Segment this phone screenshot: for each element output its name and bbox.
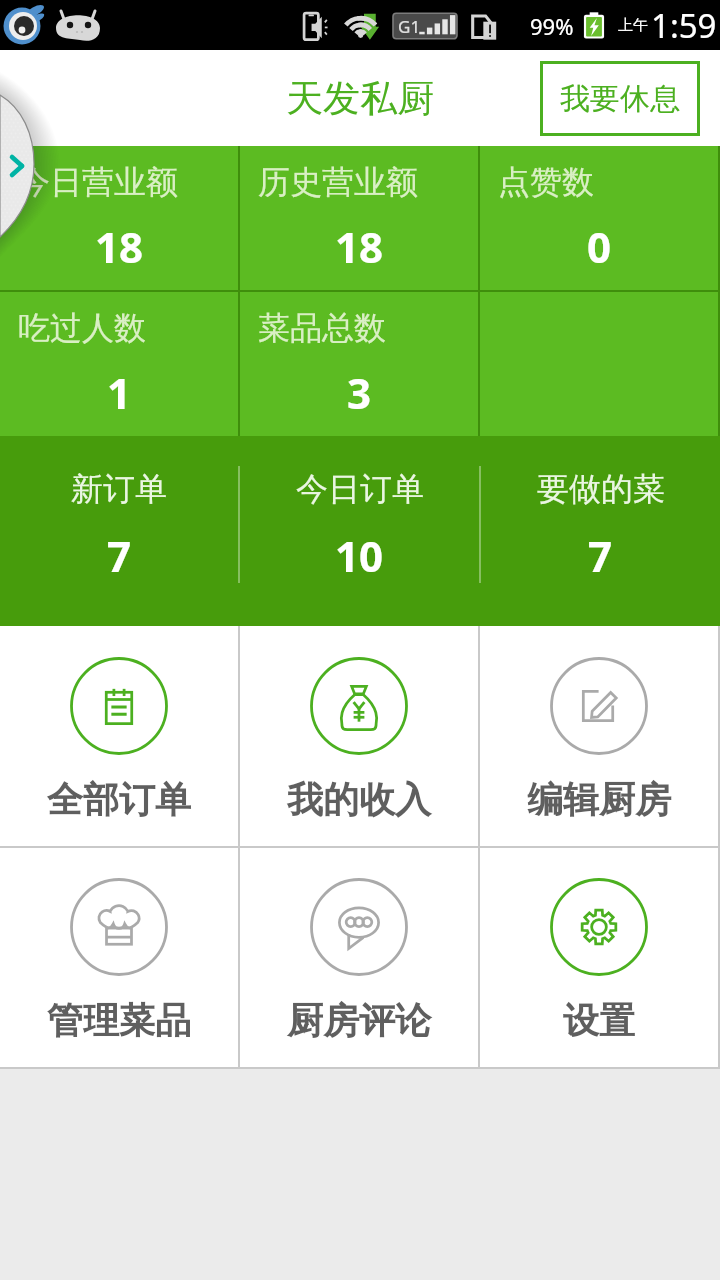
button[interactable]: 吃过人数 (0, 292, 238, 436)
staticText: 我的收入 (287, 777, 431, 822)
staticText: 7 (107, 527, 132, 584)
button[interactable]: 全部订单 (0, 626, 238, 846)
staticText: 上午 (618, 16, 648, 35)
staticText: 1 (0, 364, 238, 421)
staticText: 设置 (563, 998, 635, 1043)
button[interactable]: 厨房评论 (240, 848, 478, 1067)
button[interactable]: 点赞数 (480, 146, 718, 290)
staticText: 全部订单 (47, 777, 191, 822)
button[interactable]: 设置 (480, 848, 718, 1067)
staticText: 今日订单 (296, 469, 424, 509)
button[interactable]: 今日营业额 (0, 146, 238, 290)
staticText: 0 (480, 218, 718, 275)
button[interactable]: 历史营业额 (240, 146, 478, 290)
staticText: 3 (240, 364, 478, 421)
staticText: 编辑厨房 (527, 777, 671, 822)
staticText: 天发私厨 (286, 75, 434, 122)
button[interactable]: 要做的菜 (481, 436, 720, 626)
staticText: 历史营业额 (258, 162, 418, 202)
button[interactable]: 新订单 (0, 436, 238, 626)
staticText: G1 (398, 15, 421, 38)
staticText: 吃过人数 (18, 308, 146, 348)
button[interactable]: 我的收入 (240, 626, 478, 846)
staticText: 18 (0, 218, 238, 275)
staticText: 18 (240, 218, 478, 275)
staticText: 厨房评论 (287, 998, 431, 1043)
staticText: 10 (335, 527, 384, 584)
staticText: 7 (588, 527, 613, 584)
staticText: 我要休息 (560, 80, 680, 118)
button[interactable]: 菜品总数 (240, 292, 478, 436)
staticText: 管理菜品 (47, 998, 191, 1043)
staticText: 99% (530, 11, 574, 41)
staticText: 要做的菜 (537, 469, 665, 509)
button[interactable]: 今日订单 (240, 436, 479, 626)
staticText: 今日营业额 (18, 162, 178, 202)
staticText: 1:59 (651, 3, 717, 48)
button[interactable]: 管理菜品 (0, 848, 238, 1067)
staticText: 点赞数 (498, 162, 594, 202)
button[interactable]: 我要休息 (540, 61, 700, 136)
staticText: 菜品总数 (258, 308, 386, 348)
button[interactable]: Open navigation drawer (0, 95, 36, 240)
button[interactable]: 编辑厨房 (480, 626, 718, 846)
staticText: 新订单 (71, 469, 167, 509)
